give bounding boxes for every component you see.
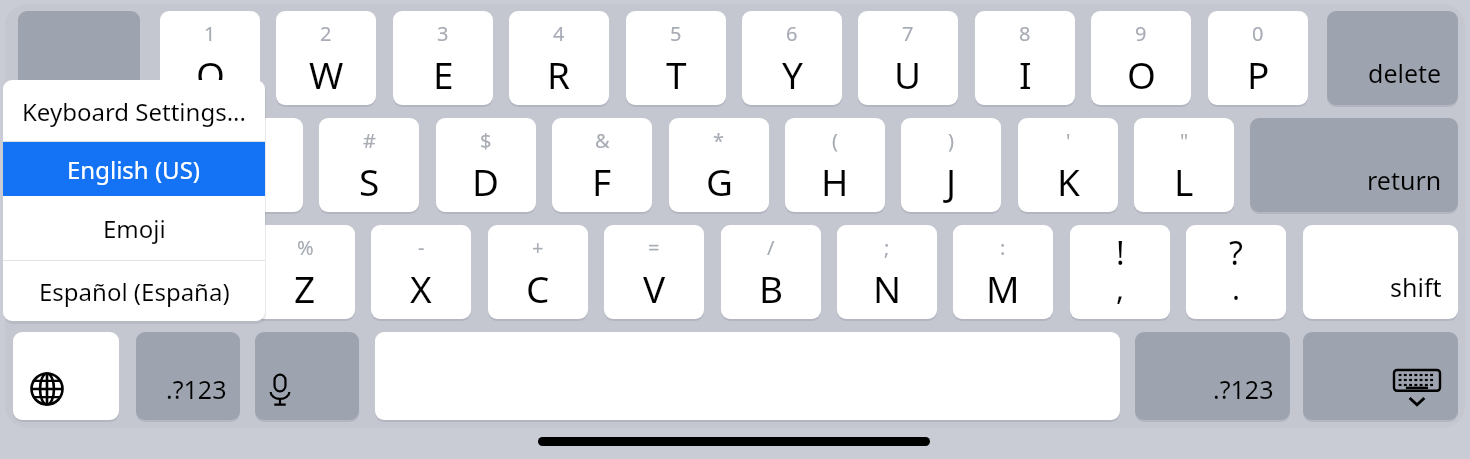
staticText: shift xyxy=(1390,270,1442,304)
staticText: Q xyxy=(196,49,225,99)
staticText: delete xyxy=(1368,56,1442,90)
staticText: ( xyxy=(832,127,838,154)
staticText: / xyxy=(767,234,775,261)
staticText: - xyxy=(418,234,425,261)
button[interactable]: * xyxy=(669,118,769,212)
staticText: Emoji xyxy=(103,212,166,245)
button[interactable]: 9 xyxy=(1091,11,1191,105)
staticText: 9 xyxy=(1135,20,1147,47)
button[interactable]: 2 xyxy=(276,11,376,105)
staticText: " xyxy=(1180,127,1189,154)
staticText: ? xyxy=(1229,231,1243,275)
staticText: = xyxy=(648,234,660,261)
button[interactable]: # xyxy=(319,118,419,212)
button[interactable]: 0 xyxy=(1208,11,1308,105)
button[interactable]: 1 xyxy=(160,11,260,105)
staticText: V xyxy=(643,263,666,313)
button[interactable]: Emoji xyxy=(3,196,265,260)
button[interactable]: Keyboard Settings... xyxy=(3,80,265,142)
staticText: ) xyxy=(948,127,954,154)
button[interactable]: + xyxy=(488,225,588,319)
staticText: ' xyxy=(1066,127,1071,154)
button[interactable]: ) xyxy=(901,118,1001,212)
staticText: I xyxy=(1019,49,1032,99)
button[interactable]: ' xyxy=(1018,118,1118,212)
button[interactable]: Hide keyboard xyxy=(1303,332,1458,420)
button[interactable]: - xyxy=(371,225,471,319)
button[interactable]: return xyxy=(1250,118,1458,212)
staticText: O xyxy=(1127,49,1156,99)
button[interactable]: @ xyxy=(203,118,303,212)
staticText: .?123 xyxy=(1213,372,1274,406)
staticText: D xyxy=(472,156,500,206)
staticText: $ xyxy=(480,127,492,154)
button[interactable]: ; xyxy=(837,225,937,319)
staticText: English (US) xyxy=(67,153,201,186)
staticText: .?123 xyxy=(166,372,227,406)
button[interactable]: & xyxy=(552,118,652,212)
button[interactable]: 3 xyxy=(393,11,493,105)
button[interactable]: 8 xyxy=(975,11,1075,105)
button[interactable]: / xyxy=(721,225,821,319)
staticText: F xyxy=(592,156,612,206)
staticText: K xyxy=(1057,156,1080,206)
button[interactable]: shift xyxy=(1303,225,1458,319)
staticText: 0 xyxy=(1252,20,1264,47)
button[interactable]: : xyxy=(953,225,1053,319)
staticText: ; xyxy=(884,234,890,261)
staticText: Y xyxy=(782,49,803,99)
staticText: J xyxy=(946,156,957,206)
staticText: S xyxy=(359,156,380,206)
staticText: , xyxy=(1116,268,1125,309)
button[interactable]: .?123 xyxy=(1135,332,1290,420)
button[interactable]: 4 xyxy=(509,11,609,105)
button[interactable]: 6 xyxy=(742,11,842,105)
staticText: R xyxy=(547,49,571,99)
staticText: 5 xyxy=(670,20,682,47)
button[interactable]: Tab xyxy=(18,11,140,105)
staticText: Keyboard Settings... xyxy=(22,95,246,128)
button[interactable]: ( xyxy=(785,118,885,212)
button[interactable]: Change keyboard language xyxy=(13,332,119,420)
button[interactable]: $ xyxy=(436,118,536,212)
button[interactable]: = xyxy=(604,225,704,319)
button[interactable]: % xyxy=(255,225,355,319)
button[interactable]: 7 xyxy=(858,11,958,105)
staticText: @ xyxy=(244,127,262,154)
button[interactable]: Español (España) xyxy=(3,261,265,321)
button[interactable]: .?123 xyxy=(136,332,240,420)
staticText: % xyxy=(297,234,314,261)
staticText: Z xyxy=(294,263,316,313)
staticText: M xyxy=(986,263,1020,313)
staticText: N xyxy=(873,263,902,313)
staticText: A xyxy=(241,156,265,206)
staticText: * xyxy=(713,127,725,154)
button[interactable]: Dictation xyxy=(255,332,359,420)
button[interactable]: " xyxy=(1134,118,1234,212)
staticText: & xyxy=(595,127,610,154)
button[interactable]: 5 xyxy=(626,11,726,105)
button[interactable]: ! xyxy=(1070,225,1170,319)
staticText: 7 xyxy=(902,20,914,47)
staticText: U xyxy=(894,49,922,99)
staticText: X xyxy=(410,263,432,313)
staticText: . xyxy=(1232,268,1241,309)
staticText: E xyxy=(433,49,454,99)
button[interactable]: delete xyxy=(1327,11,1458,105)
staticText: 2 xyxy=(320,20,332,47)
staticText: 4 xyxy=(553,20,565,47)
button[interactable]: ? xyxy=(1186,225,1286,319)
staticText: L xyxy=(1174,156,1194,206)
staticText: P xyxy=(1247,49,1270,99)
staticText: ! xyxy=(1116,231,1125,275)
staticText: 8 xyxy=(1019,20,1031,47)
button[interactable]: English (US) xyxy=(3,142,265,196)
staticText: T xyxy=(666,49,687,99)
staticText: # xyxy=(363,127,376,154)
staticText: B xyxy=(759,263,784,313)
staticText: return xyxy=(1367,163,1442,197)
staticText: + xyxy=(532,234,544,261)
staticText: H xyxy=(821,156,849,206)
staticText: 1 xyxy=(204,20,216,47)
